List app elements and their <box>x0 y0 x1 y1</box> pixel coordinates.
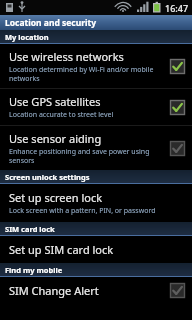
staticText: Lock screen with a pattern, PIN, or pass… <box>9 206 156 216</box>
button[interactable]: Checked <box>169 140 186 157</box>
staticText: 16:47 <box>165 2 189 14</box>
staticText: Set up SIM card lock <box>9 242 114 257</box>
button[interactable]: Use wireless networks <box>0 44 192 88</box>
staticText: Enhance positioning and save power using… <box>9 147 164 165</box>
staticText: Set up screen lock <box>9 190 103 205</box>
button[interactable]: Use GPS satellites <box>0 89 192 125</box>
staticText: Location accurate to street level <box>9 110 114 120</box>
staticText: Screen unlock settings <box>5 172 90 182</box>
button[interactable]: Use sensor aiding <box>0 126 192 170</box>
staticText: Location determined by Wi-Fi and/or mobi… <box>9 65 164 83</box>
button[interactable]: Checked <box>169 58 186 75</box>
staticText: Use sensor aiding <box>9 131 102 146</box>
button[interactable]: Set up screen lock <box>0 184 192 222</box>
staticText: Location and security <box>5 17 97 29</box>
button[interactable]: SIM Change Alert <box>0 277 192 304</box>
button[interactable]: Checked <box>169 99 186 116</box>
staticText: SIM Change Alert <box>9 283 99 298</box>
staticText: My location <box>5 32 49 42</box>
staticText: Use GPS satellites <box>9 94 101 109</box>
staticText: Use wireless networks <box>9 49 124 64</box>
staticText: Find my mobile <box>5 265 63 275</box>
button[interactable]: Set up SIM card lock <box>0 236 192 263</box>
button[interactable]: Checked <box>169 282 186 299</box>
staticText: SIM card lock <box>5 224 55 234</box>
